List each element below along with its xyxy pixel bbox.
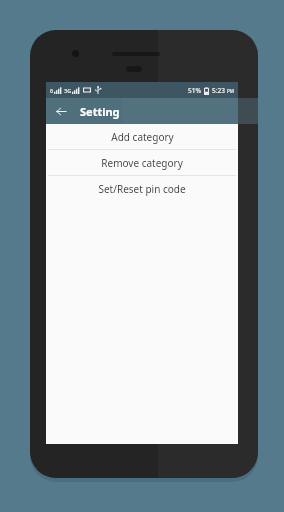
staticText: 6: [50, 87, 54, 94]
staticText: Set/Reset pin code: [98, 182, 186, 196]
button[interactable]: Remove category: [46, 150, 238, 176]
staticText: 51%: [188, 86, 201, 95]
staticText: PM: [227, 88, 234, 94]
staticText: Setting: [80, 104, 120, 119]
button[interactable]: Add category: [46, 124, 238, 150]
button[interactable]: Set/Reset pin code: [46, 176, 238, 201]
staticText: Remove category: [101, 156, 183, 170]
staticText: 3G: [64, 87, 72, 94]
staticText: Add category: [111, 130, 174, 144]
staticText: 5:23: [212, 86, 225, 95]
button[interactable]: Back: [51, 101, 71, 121]
